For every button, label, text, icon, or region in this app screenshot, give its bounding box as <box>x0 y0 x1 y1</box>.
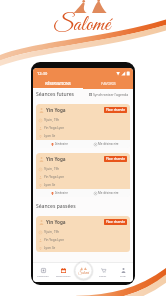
staticText: Séances futures <box>36 91 74 98</box>
button[interactable]: Me désinscrire <box>83 140 130 148</box>
button[interactable]: Itinéraire <box>36 140 83 148</box>
staticText: Yin Yoga Lyon <box>44 175 65 179</box>
staticText: RÉSERVATIONS <box>45 81 71 86</box>
staticText: Séances passées <box>36 203 76 210</box>
staticText: Panier <box>99 274 107 277</box>
staticText: Synchroniser l'agenda <box>93 92 129 97</box>
staticText: Yin Yoga <box>46 156 66 162</box>
button[interactable]: Panier <box>93 263 113 282</box>
button[interactable]: Yin Yoga <box>36 104 130 148</box>
staticText: 12:30 <box>37 71 48 76</box>
button[interactable]: Salomé <box>74 261 93 280</box>
staticText: Yin Yoga Lyon <box>44 126 65 130</box>
staticText: Yin Yoga Lyon <box>44 238 65 242</box>
staticText: Lyon 3e <box>44 183 56 187</box>
staticText: Lyon 3e <box>44 134 56 138</box>
staticText: FAVORIS <box>101 81 116 86</box>
button[interactable]: Place réservée <box>106 157 125 161</box>
staticText: Profil <box>120 274 126 277</box>
button[interactable]: FAVORIS <box>83 78 133 88</box>
staticText: Réservations <box>56 274 71 277</box>
staticText: Yin Yoga <box>46 219 66 225</box>
staticText: Place réservée <box>106 108 125 112</box>
button[interactable]: Profil <box>113 263 133 282</box>
button[interactable]: Synchroniser l'agenda <box>88 91 130 98</box>
button[interactable]: RÉSERVATIONS <box>33 78 83 88</box>
staticText: Itinéraire <box>55 142 68 146</box>
staticText: 9 juin, 19h <box>44 167 60 171</box>
button[interactable]: Me désinscrire <box>83 189 130 197</box>
staticText: Yin Yoga <box>46 107 66 113</box>
button[interactable]: Place réservée <box>106 220 125 224</box>
button[interactable]: Réservations <box>53 263 73 282</box>
staticText: Calendrier <box>37 274 49 277</box>
button[interactable]: Yin Yoga <box>36 216 130 252</box>
staticText: Place réservée <box>106 157 125 161</box>
staticText: Salomé <box>53 11 111 39</box>
button[interactable]: Itinéraire <box>36 189 83 197</box>
button[interactable]: Calendrier <box>33 263 53 282</box>
staticText: Lyon 3e <box>44 246 56 250</box>
staticText: Me désinscrire <box>98 191 119 195</box>
button[interactable]: Yin Yoga <box>36 153 130 197</box>
staticText: Me désinscrire <box>98 142 119 146</box>
staticText: 9 juin, 19h <box>44 230 60 234</box>
staticText: Place réservée <box>106 220 125 224</box>
staticText: Itinéraire <box>55 191 68 195</box>
staticText: 9 juin, 19h <box>44 118 60 122</box>
staticText: Salomé <box>78 270 89 275</box>
button[interactable]: Place réservée <box>106 108 125 112</box>
